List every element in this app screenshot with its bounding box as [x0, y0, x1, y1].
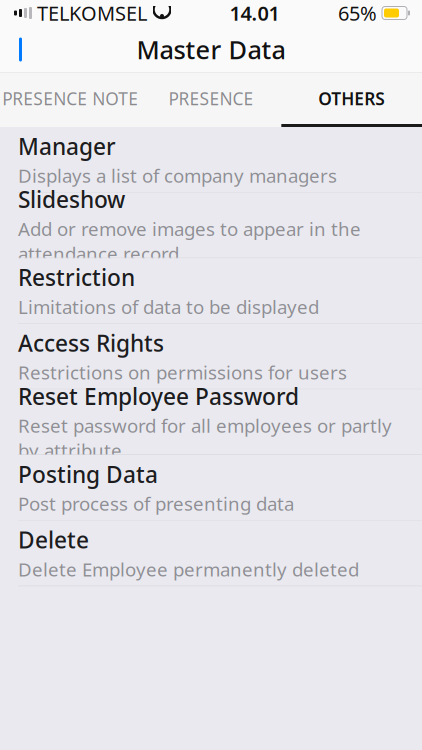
staticText: Reset password for all employees or part…	[18, 413, 392, 463]
staticText: Delete Employee permanently deleted	[18, 557, 359, 582]
staticText: Add or remove images to appear in the at…	[18, 216, 361, 266]
button[interactable]: Manager	[0, 127, 422, 193]
button[interactable]: Posting Data	[0, 455, 422, 521]
button[interactable]: OTHERS	[281, 73, 422, 124]
staticText: Restriction	[18, 262, 135, 292]
button[interactable]: PRESENCE NOTE	[0, 73, 141, 124]
staticText: Access Rights	[18, 328, 164, 358]
staticText: Posting Data	[18, 459, 158, 489]
staticText: Limitations of data to be displayed	[18, 294, 319, 319]
button[interactable]: Back	[0, 26, 46, 73]
button[interactable]: Delete	[0, 521, 422, 586]
staticText: Slideshow	[18, 184, 125, 214]
button[interactable]: Access Rights	[0, 324, 422, 389]
staticText: PRESENCE NOTE	[2, 87, 138, 110]
staticText: OTHERS	[318, 87, 385, 110]
staticText: Master Data	[136, 33, 285, 66]
staticText: Reset Employee Password	[18, 381, 299, 411]
staticText: Restrictions on permissions for users	[18, 360, 347, 385]
staticText: Displays a list of company managers	[18, 163, 337, 188]
staticText: TELKOMSEL	[37, 0, 147, 26]
button[interactable]: Restriction	[0, 258, 422, 324]
staticText: 14.01	[229, 0, 279, 26]
button[interactable]: Reset Employee Password	[0, 389, 422, 455]
staticText: Manager	[18, 131, 116, 161]
staticText: PRESENCE	[168, 87, 253, 110]
button[interactable]: PRESENCE	[141, 73, 281, 124]
staticText: 65%	[338, 0, 377, 26]
button[interactable]: Slideshow	[0, 193, 422, 258]
staticText: Post process of presenting data	[18, 491, 294, 516]
staticText: Delete	[18, 525, 89, 555]
